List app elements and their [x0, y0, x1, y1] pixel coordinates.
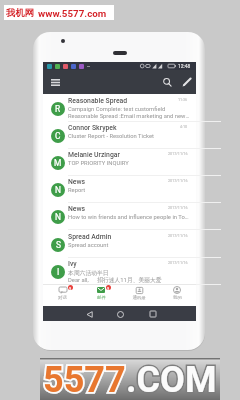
- button[interactable]: R: [43, 95, 196, 122]
- button[interactable]: Open navigation menu: [46, 73, 64, 91]
- staticText: How to win friends and influence people …: [68, 214, 190, 221]
- staticText: R: [55, 104, 61, 114]
- staticText: M: [54, 158, 62, 168]
- staticText: 9: [107, 286, 110, 290]
- button[interactable]: I: [43, 258, 196, 285]
- button[interactable]: 我的: [158, 284, 196, 306]
- staticText: 5577: [43, 359, 126, 400]
- staticText: 9: [69, 286, 72, 290]
- staticText: 5577: [43, 359, 126, 400]
- staticText: 我的: [173, 295, 182, 301]
- staticText: I: [57, 267, 60, 277]
- staticText: Ivy: [68, 260, 77, 268]
- staticText: www.5577.com: [38, 8, 107, 19]
- staticText: 2017/11/16: [168, 234, 188, 238]
- staticText: 4:10: [180, 125, 188, 129]
- staticText: 本周六活动半日: [68, 269, 109, 276]
- button[interactable]: 9: [43, 284, 82, 306]
- button[interactable]: Home: [113, 307, 127, 321]
- button[interactable]: M: [43, 149, 196, 176]
- button[interactable]: Compose new message: [178, 73, 196, 91]
- button[interactable]: Back: [82, 307, 96, 321]
- staticText: 通讯录: [132, 295, 146, 301]
- staticText: 11:36: [178, 98, 188, 102]
- button[interactable]: N: [43, 176, 196, 203]
- button[interactable]: 通讯录: [120, 284, 158, 306]
- staticText: Reasonable Spread :Email marketing and n…: [68, 113, 190, 120]
- button[interactable]: Search: [158, 73, 176, 91]
- staticText: 2017/11/16: [168, 261, 188, 265]
- staticText: 2017/11/16: [168, 152, 188, 156]
- staticText: TOP PRIORITY INQUIRY: [68, 160, 129, 167]
- button[interactable]: C: [43, 122, 196, 149]
- staticText: 我机网: [6, 7, 34, 19]
- staticText: Dear all, 招行迷人11月、美丽大爱: [68, 276, 162, 283]
- staticText: Spread account: [68, 242, 109, 249]
- button[interactable]: Recent apps: [146, 307, 160, 321]
- staticText: 2017/11/16: [168, 179, 188, 183]
- button[interactable]: 9: [82, 284, 120, 306]
- staticText: Reasonable Spread: [68, 97, 128, 105]
- staticText: .COM: [126, 359, 217, 400]
- staticText: 邮件: [97, 295, 106, 301]
- staticText: S: [56, 240, 61, 250]
- staticText: Spread Admin: [68, 233, 112, 241]
- staticText: News: [68, 205, 86, 213]
- staticText: 对话: [58, 295, 67, 301]
- staticText: Campaign Complete: test customfield: [68, 106, 166, 113]
- staticText: 12:48: [178, 63, 191, 69]
- staticText: C: [55, 131, 61, 141]
- staticText: 2017/11/16: [168, 206, 188, 210]
- staticText: Cluster Report - Resolution Ticket: [68, 133, 154, 140]
- staticText: Melanie Urzingar: [68, 151, 120, 159]
- button[interactable]: S: [43, 231, 196, 258]
- staticText: N: [55, 212, 61, 222]
- staticText: News: [68, 178, 86, 186]
- staticText: Connor Skrypek: [68, 124, 117, 132]
- staticText: .COM: [126, 359, 217, 400]
- button[interactable]: N: [43, 203, 196, 230]
- staticText: N: [55, 185, 61, 195]
- staticText: Report: [68, 187, 86, 194]
